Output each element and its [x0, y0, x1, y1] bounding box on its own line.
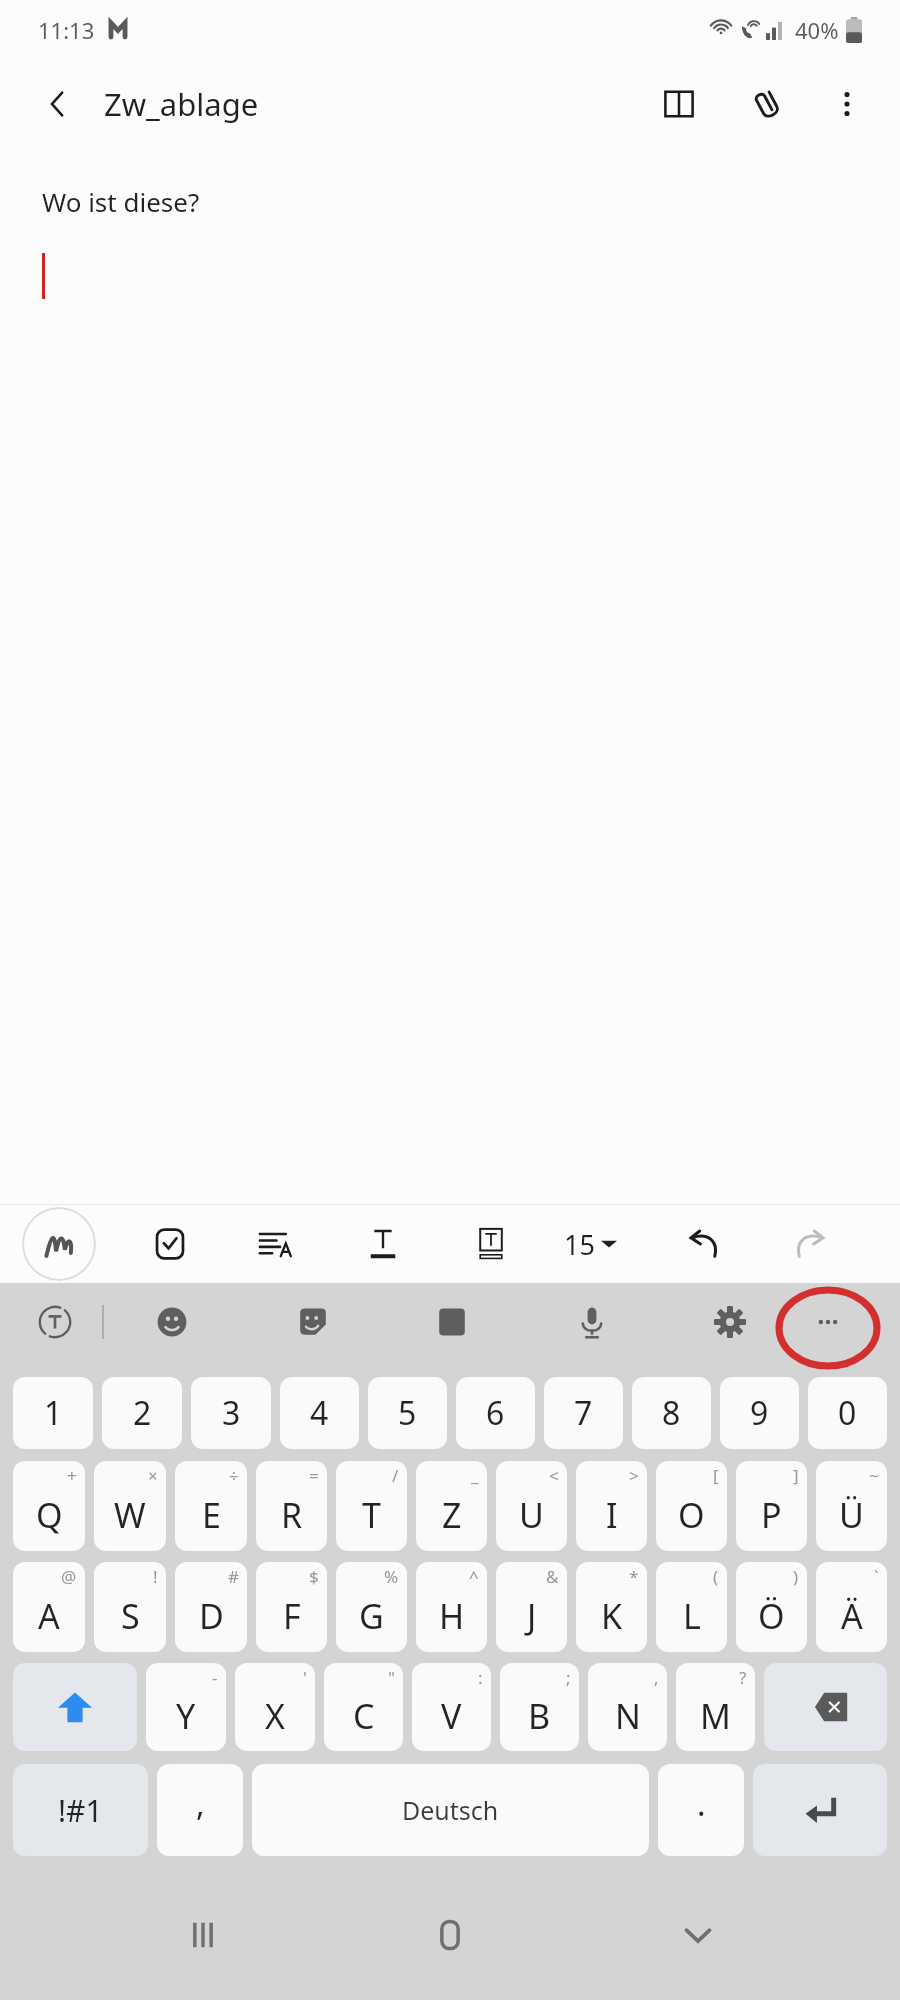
button[interactable]: Voice input — [560, 1290, 624, 1354]
staticText: 5 — [398, 1391, 417, 1435]
button[interactable]: ( — [656, 1562, 727, 1652]
button[interactable]: 1 — [13, 1377, 93, 1449]
button[interactable]: More options — [818, 75, 876, 133]
button[interactable]: Enter — [753, 1764, 887, 1856]
staticText: % — [384, 1565, 399, 1588]
button[interactable]: ; — [500, 1663, 579, 1751]
staticText: U — [519, 1492, 544, 1538]
button[interactable]: / — [336, 1461, 407, 1551]
staticText: ; — [566, 1666, 571, 1689]
button[interactable]: Translate — [23, 1290, 87, 1354]
button[interactable]: Backspace — [764, 1663, 887, 1751]
button[interactable]: , — [157, 1764, 243, 1856]
button[interactable]: , — [588, 1663, 667, 1751]
button[interactable]: > — [576, 1461, 647, 1551]
button[interactable]: $ — [256, 1562, 327, 1652]
staticText: 3 — [222, 1391, 241, 1435]
staticText: D — [199, 1593, 224, 1639]
staticText: H — [439, 1593, 465, 1639]
button[interactable]: & — [496, 1562, 567, 1652]
button[interactable]: Deutsch — [252, 1764, 649, 1856]
button[interactable]: Checklist — [138, 1212, 202, 1276]
button[interactable]: _ — [416, 1461, 487, 1551]
staticText: > — [629, 1464, 639, 1487]
button[interactable]: Keyboard settings — [698, 1290, 762, 1354]
button[interactable]: ^ — [416, 1562, 487, 1652]
button[interactable]: ' — [235, 1663, 315, 1751]
button[interactable]: ÷ — [175, 1461, 247, 1551]
button[interactable]: Undo — [672, 1212, 736, 1276]
button[interactable]: Text style — [351, 1212, 415, 1276]
button[interactable]: 7 — [544, 1377, 623, 1449]
button[interactable]: 8 — [632, 1377, 711, 1449]
button[interactable]: !#1 — [13, 1764, 148, 1856]
staticText: I — [606, 1492, 618, 1538]
staticText: ? — [739, 1666, 747, 1689]
button[interactable]: Back — [30, 76, 86, 132]
button[interactable]: 2 — [102, 1377, 182, 1449]
staticText: M — [700, 1693, 731, 1739]
button[interactable]: ] — [736, 1461, 807, 1551]
staticText: 4 — [310, 1391, 329, 1435]
staticText: 2 — [133, 1391, 152, 1435]
button[interactable]: 4 — [280, 1377, 359, 1449]
button[interactable]: 5 — [368, 1377, 447, 1449]
staticText: ) — [793, 1565, 799, 1588]
staticText: × — [148, 1464, 158, 1487]
button[interactable]: Shift — [13, 1663, 137, 1751]
button[interactable]: - — [146, 1663, 226, 1751]
button[interactable]: Handwriting — [22, 1207, 96, 1281]
button[interactable]: Recent apps — [158, 1890, 248, 1980]
staticText: C — [353, 1693, 375, 1739]
button[interactable]: View mode — [650, 75, 708, 133]
staticText: W — [114, 1492, 146, 1538]
staticText: B — [528, 1693, 551, 1739]
staticText: : — [478, 1666, 483, 1689]
button[interactable]: 0 — [808, 1377, 887, 1449]
button[interactable]: = — [256, 1461, 327, 1551]
button[interactable]: ` — [816, 1562, 887, 1652]
button[interactable]: Paragraph style — [243, 1212, 307, 1276]
button[interactable]: 3 — [191, 1377, 271, 1449]
button[interactable]: ? — [676, 1663, 755, 1751]
button[interactable]: 15 — [558, 1212, 623, 1276]
staticText: V — [441, 1693, 462, 1739]
button[interactable]: # — [175, 1562, 247, 1652]
staticText: ( — [713, 1565, 719, 1588]
staticText: K — [601, 1593, 623, 1639]
button[interactable]: GIF — [420, 1290, 484, 1354]
button[interactable]: Stickers — [281, 1290, 345, 1354]
staticText: ` — [874, 1565, 879, 1588]
button[interactable]: @ — [13, 1562, 85, 1652]
button[interactable]: . — [658, 1764, 744, 1856]
button[interactable]: Redo — [778, 1212, 842, 1276]
button[interactable]: Emoji — [140, 1290, 204, 1354]
button[interactable]: ) — [736, 1562, 807, 1652]
button[interactable]: % — [336, 1562, 407, 1652]
button[interactable]: + — [13, 1461, 85, 1551]
staticText: J — [527, 1593, 537, 1639]
button[interactable]: More keyboard options — [796, 1290, 860, 1354]
staticText: 1 — [44, 1391, 63, 1435]
staticText: 0 — [838, 1391, 857, 1435]
staticText: E — [202, 1492, 221, 1538]
button[interactable]: ! — [94, 1562, 166, 1652]
staticText: Wo ist diese? — [42, 184, 200, 219]
button[interactable]: < — [496, 1461, 567, 1551]
button[interactable]: ~ — [816, 1461, 887, 1551]
button[interactable]: × — [94, 1461, 166, 1551]
button[interactable]: Attach — [738, 75, 796, 133]
button[interactable]: * — [576, 1562, 647, 1652]
button[interactable]: Text box — [459, 1212, 523, 1276]
staticText: S — [121, 1593, 140, 1639]
staticText: P — [761, 1492, 782, 1538]
button[interactable]: : — [412, 1663, 491, 1751]
button[interactable]: Hide keyboard — [653, 1890, 743, 1980]
button[interactable]: [ — [656, 1461, 727, 1551]
button[interactable]: " — [324, 1663, 403, 1751]
staticText: G — [359, 1593, 384, 1639]
button[interactable]: 9 — [720, 1377, 799, 1449]
staticText: ÷ — [229, 1464, 239, 1487]
button[interactable]: Home — [405, 1890, 495, 1980]
button[interactable]: 6 — [456, 1377, 535, 1449]
